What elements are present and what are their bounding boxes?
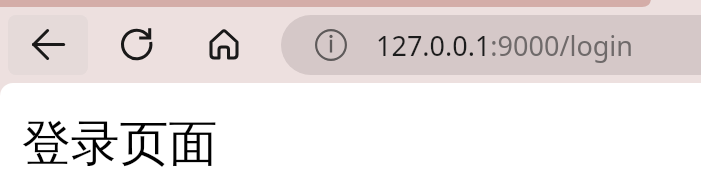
staticText: 127.0.0.1:9000/login [376,27,633,64]
button[interactable]: Home [185,15,265,75]
button[interactable]: Back [8,15,88,75]
button[interactable]: Reload [96,15,176,75]
other: Site information [315,29,347,61]
staticText: 登录页面 [22,113,218,174]
button[interactable]: Site information [281,15,701,75]
